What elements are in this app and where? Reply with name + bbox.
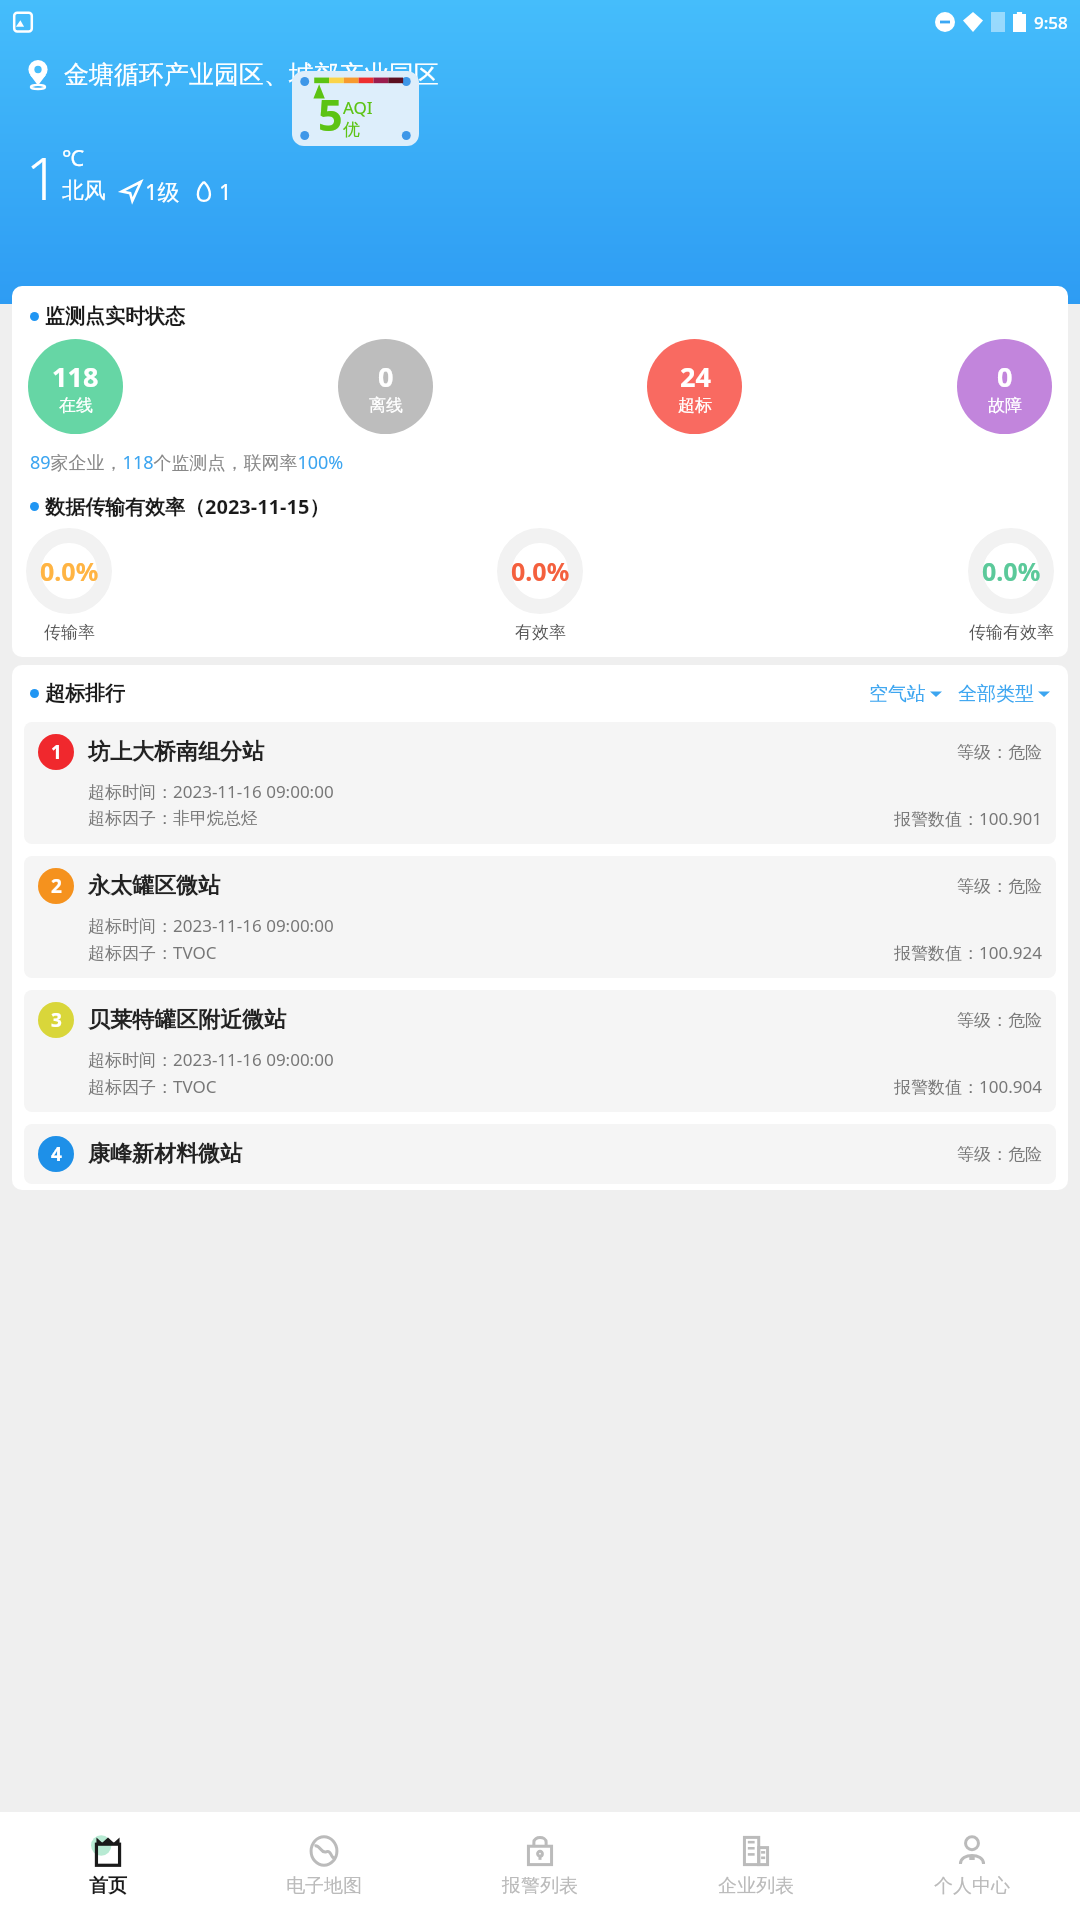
- staticText: 24: [680, 358, 711, 395]
- staticText: 空气站: [869, 682, 926, 706]
- staticText: 故障: [988, 395, 1022, 416]
- staticText: 超标时间：2023-11-16 09:00:00: [88, 1048, 334, 1071]
- staticText: 监测点实时状态: [45, 304, 185, 329]
- staticText: 离线: [369, 395, 403, 416]
- staticText: 首页: [89, 1874, 127, 1898]
- staticText: 0.0%: [982, 554, 1041, 588]
- staticText: 5: [318, 85, 343, 144]
- staticText: 在线: [59, 395, 93, 416]
- staticText: 康峰新材料微站: [88, 1140, 242, 1168]
- staticText: 企业列表: [718, 1874, 794, 1898]
- button[interactable]: 报警列表: [432, 1812, 648, 1920]
- staticText: 3: [51, 1007, 62, 1033]
- staticText: 有效率: [515, 622, 566, 643]
- staticText: 等级：危险: [957, 1144, 1042, 1165]
- staticText: 电子地图: [286, 1874, 362, 1898]
- staticText: 坊上大桥南组分站: [88, 738, 264, 766]
- staticText: 超标因子：非甲烷总烃: [88, 808, 258, 829]
- staticText: 1级: [145, 176, 180, 206]
- staticText: 等级：危险: [957, 876, 1042, 897]
- staticText: 超标排行: [45, 681, 125, 706]
- button[interactable]: 全部类型: [958, 682, 1050, 706]
- staticText: 0: [378, 358, 394, 395]
- staticText: 0.0%: [511, 554, 570, 588]
- staticText: 118: [52, 358, 99, 395]
- staticText: AQI: [343, 96, 373, 119]
- button[interactable]: 1: [24, 722, 1056, 844]
- staticText: 数据传输有效率（2023-11-15）: [45, 493, 330, 520]
- staticText: 个人中心: [934, 1874, 1010, 1898]
- staticText: 4: [51, 1141, 62, 1167]
- staticText: 北风: [62, 177, 106, 205]
- staticText: 金塘循环产业园区、城郊产业园区: [64, 59, 439, 90]
- button[interactable]: 0.0%: [497, 528, 583, 643]
- staticText: 1: [26, 138, 60, 217]
- staticText: 1: [219, 176, 232, 206]
- button[interactable]: 首页: [0, 1812, 216, 1920]
- staticText: 传输率: [44, 622, 95, 643]
- button[interactable]: 5: [292, 71, 419, 146]
- button[interactable]: 电子地图: [216, 1812, 432, 1920]
- staticText: 9:58: [1034, 11, 1068, 34]
- staticText: ℃: [62, 142, 84, 172]
- button[interactable]: 0: [338, 339, 433, 434]
- button[interactable]: 4: [24, 1124, 1056, 1184]
- staticText: 永太罐区微站: [88, 872, 220, 900]
- staticText: 1: [51, 739, 62, 765]
- button[interactable]: 0: [957, 339, 1052, 434]
- button[interactable]: 118: [28, 339, 123, 434]
- staticText: 优: [343, 119, 360, 140]
- staticText: 0.0%: [40, 554, 99, 588]
- button[interactable]: 2: [24, 856, 1056, 978]
- staticText: 报警列表: [502, 1874, 578, 1898]
- button[interactable]: 3: [24, 990, 1056, 1112]
- staticText: 传输有效率: [969, 622, 1054, 643]
- staticText: 0: [997, 358, 1013, 395]
- staticText: 超标: [678, 395, 712, 416]
- staticText: 贝莱特罐区附近微站: [88, 1006, 286, 1034]
- staticText: 超标时间：2023-11-16 09:00:00: [88, 914, 334, 937]
- staticText: 超标因子：TVOC: [88, 941, 217, 964]
- staticText: 超标因子：TVOC: [88, 1075, 217, 1098]
- staticText: 89家企业，118个监测点，联网率100%: [30, 450, 344, 475]
- staticText: 2: [51, 873, 62, 899]
- staticText: 等级：危险: [957, 742, 1042, 763]
- staticText: 等级：危险: [957, 1010, 1042, 1031]
- button[interactable]: 0.0%: [26, 528, 112, 643]
- button[interactable]: 0.0%: [968, 528, 1054, 643]
- staticText: 超标时间：2023-11-16 09:00:00: [88, 780, 334, 803]
- button[interactable]: 个人中心: [864, 1812, 1080, 1920]
- button[interactable]: 空气站: [869, 682, 942, 706]
- button[interactable]: 24: [647, 339, 742, 434]
- button[interactable]: 企业列表: [648, 1812, 864, 1920]
- staticText: 报警数值：100.924: [894, 941, 1042, 964]
- staticText: 全部类型: [958, 682, 1034, 706]
- staticText: 报警数值：100.901: [894, 807, 1042, 830]
- staticText: 报警数值：100.904: [894, 1075, 1042, 1098]
